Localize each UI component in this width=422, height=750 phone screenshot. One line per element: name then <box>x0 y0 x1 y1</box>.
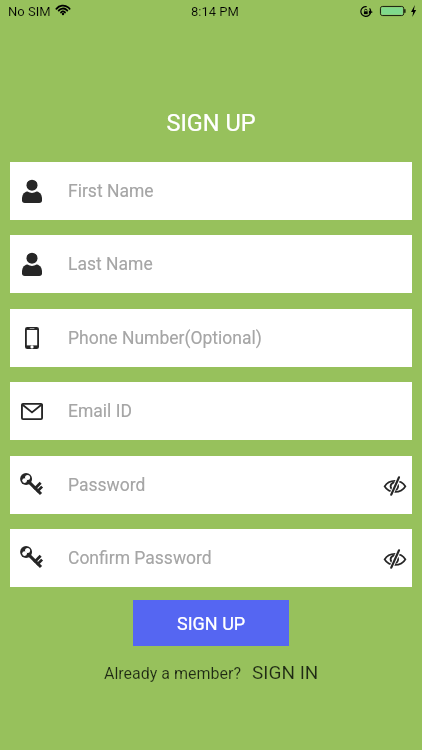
button[interactable]: Confirm Password <box>10 529 412 587</box>
button[interactable]: SIGN UP <box>133 600 289 646</box>
staticText: First Name <box>68 181 154 202</box>
staticText: No SIM <box>8 4 51 19</box>
staticText: Password <box>68 475 146 496</box>
button[interactable]: Last Name <box>10 235 412 293</box>
button[interactable]: Password <box>10 456 412 514</box>
staticText: Already a member? <box>104 664 242 683</box>
staticText: Last Name <box>68 254 153 275</box>
staticText: Confirm Password <box>68 548 212 569</box>
staticText: 8:14 PM <box>191 4 239 19</box>
staticText: Phone Number(Optional) <box>68 328 262 349</box>
button[interactable]: Email ID <box>10 382 412 440</box>
button[interactable]: SIGN IN <box>252 661 319 683</box>
staticText: SIGN UP <box>177 613 246 634</box>
button[interactable]: Toggle password visibility <box>374 456 412 514</box>
staticText: SIGN UP <box>0 109 422 137</box>
staticText: Email ID <box>68 401 132 422</box>
staticText: SIGN IN <box>252 661 319 683</box>
button[interactable]: Phone Number(Optional) <box>10 309 412 367</box>
button[interactable]: Toggle password visibility <box>374 529 412 587</box>
button[interactable]: First Name <box>10 162 412 220</box>
